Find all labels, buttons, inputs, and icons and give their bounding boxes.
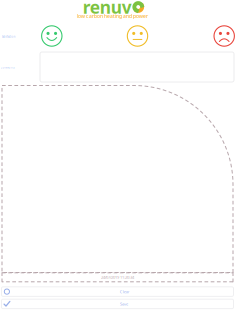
staticText: low carbon heating and power [77,12,148,20]
staticText: Comments [1,66,15,69]
staticText: Satisfaction [2,35,16,38]
button[interactable]: Neutral [122,21,152,51]
button[interactable]: Happy [37,21,67,51]
staticText: 24/07/2019 11:20:34 [101,275,134,280]
button[interactable]: Clear [1,287,233,296]
button[interactable]: Unhappy [209,21,236,51]
staticText: Clear [120,289,130,294]
staticText: Save [120,301,128,307]
button[interactable]: Save [1,299,233,309]
staticText: renuv [83,0,132,18]
